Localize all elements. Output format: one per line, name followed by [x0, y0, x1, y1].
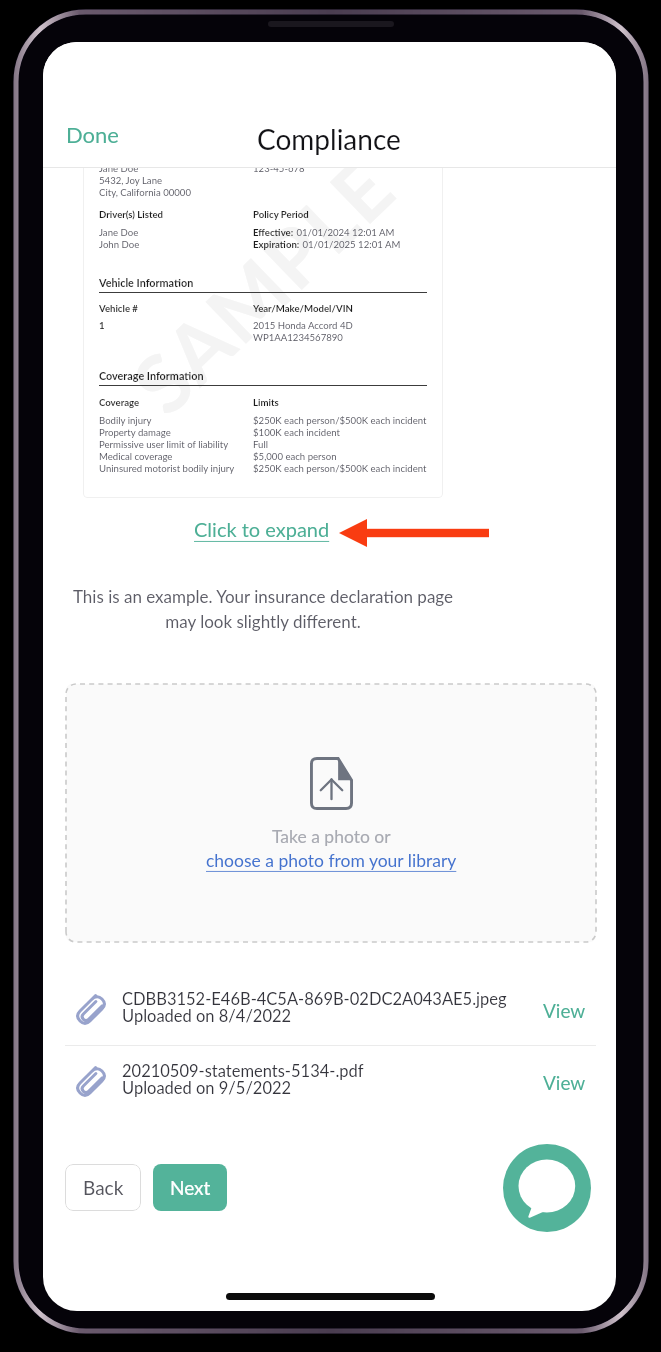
staticText: SAMPLE — [113, 168, 412, 431]
staticText: Effective: — [253, 227, 294, 239]
button[interactable]: View — [537, 993, 592, 1028]
staticText: Permissive user limit of liability — [99, 439, 229, 451]
staticText: Uploaded on 9/5/2022 — [122, 1078, 292, 1098]
staticText: John Doe — [99, 239, 140, 251]
button[interactable]: Click to expand — [188, 511, 336, 547]
button[interactable]: choose a photo from your library — [206, 850, 457, 871]
staticText: 01/01/2025 12:01 AM — [300, 239, 401, 251]
staticText: Take a photo or — [272, 826, 391, 847]
staticText: Next — [170, 1176, 211, 1199]
staticText: 1 — [99, 320, 105, 332]
staticText: Medical coverage — [99, 451, 173, 463]
staticText: Vehicle Information — [99, 276, 194, 289]
staticText: Policy Period — [253, 209, 309, 221]
button[interactable]: 20210509-statements-5134-.pdf — [65, 1046, 596, 1118]
button[interactable]: Open chat — [503, 1144, 591, 1232]
button[interactable]: View — [537, 1065, 592, 1100]
staticText: Jane Doe — [99, 168, 139, 175]
staticText: Uploaded on 8/4/2022 — [122, 1006, 292, 1026]
staticText: Coverage — [99, 397, 140, 409]
staticText: Expiration: — [253, 239, 300, 251]
staticText: View — [543, 1071, 586, 1094]
staticText: $5,000 each person — [253, 451, 337, 463]
staticText: Full — [253, 439, 268, 451]
staticText: View — [543, 999, 586, 1022]
staticText: Limits — [253, 397, 279, 409]
staticText: Bodily injury — [99, 415, 152, 427]
staticText: Click to expand — [194, 517, 330, 541]
staticText: 2015 Honda Accord 4D — [253, 320, 353, 332]
staticText: CDBB3152-E46B-4C5A-869B-02DC2A043AE5.jpe… — [122, 989, 507, 1009]
staticText: City, California 00000 — [99, 187, 191, 199]
staticText: $100K each incident — [253, 427, 340, 439]
staticText: Coverage Information — [99, 369, 204, 382]
staticText: This is an example. Your insurance decla… — [64, 586, 462, 631]
button[interactable]: Next — [153, 1164, 227, 1211]
staticText: Back — [83, 1176, 124, 1199]
staticText: Property damage — [99, 427, 171, 439]
staticText: choose a photo from your library — [206, 850, 457, 871]
staticText: Jane Doe — [99, 227, 139, 239]
button[interactable]: Done — [58, 116, 127, 152]
staticText: WP1AA1234567890 — [253, 332, 343, 344]
staticText: Year/Make/Model/VIN — [253, 303, 353, 315]
button[interactable]: Take a photo or — [66, 684, 596, 942]
staticText: Done — [66, 121, 119, 147]
staticText: 20210509-statements-5134-.pdf — [122, 1061, 364, 1081]
staticText: Uninsured motorist bodily injury — [99, 463, 235, 475]
staticText: 123-45-678 — [253, 168, 305, 175]
staticText: Compliance — [257, 122, 401, 156]
staticText: $250K each person/$500K each incident — [253, 415, 427, 427]
staticText: Driver(s) Listed — [99, 209, 164, 221]
staticText: 01/01/2024 12:01 AM — [294, 227, 395, 239]
staticText: $250K each person/$500K each incident — [253, 463, 427, 475]
staticText: 5432, Joy Lane — [99, 175, 163, 187]
button[interactable]: CDBB3152-E46B-4C5A-869B-02DC2A043AE5.jpe… — [65, 974, 596, 1046]
staticText: Vehicle # — [99, 303, 138, 315]
button[interactable]: Back — [65, 1164, 141, 1211]
